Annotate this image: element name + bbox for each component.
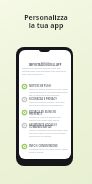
staticText: ASSISTENTE VOCALE E COMANDI RAPIDI [29,123,68,129]
button[interactable]: SICUREZZA E PRIVACY [19,97,71,107]
other: ASSISTENTE VOCALE E COMANDI RAPIDI [22,123,27,128]
button[interactable]: INFO E CONDIVISIONE [19,144,71,154]
other: INFO E CONDIVISIONE [22,144,27,149]
staticText: RICERCA ED ELENCHI PREFERITI [29,110,68,116]
other: NOTIFICHE PUSH [22,84,27,89]
staticText: Controlla chi puo vedere i tuoi dati per… [29,101,68,107]
staticText: Condividi l'app con i tuoi amici e leggi… [29,148,68,154]
staticText: IMPOSTAZIONI DELL'APP [19,63,71,67]
staticText: Personalizza la tua app [24,13,68,30]
staticText: Gestisci le ricerche salvate e gli elenc… [29,116,68,122]
staticText: INFO E CONDIVISIONE [29,144,58,148]
button[interactable]: RICERCA ED ELENCHI PREFERITI [19,110,71,122]
other: RICERCA ED ELENCHI PREFERITI [22,110,27,115]
button[interactable]: ASSISTENTE VOCALE E COMANDI RAPIDI [19,123,71,138]
staticText: Ricevi un avviso quando ci sono nuovi ag… [29,88,68,97]
staticText: SEZIONE [19,61,71,64]
staticText: Attiva i comandi vocali per usare l'app … [29,129,68,138]
staticText: SICUREZZA E PRIVACY [29,97,57,101]
staticText: NOTIFICHE PUSH [29,84,51,88]
other: SICUREZZA E PRIVACY [22,97,27,102]
button[interactable]: NOTIFICHE PUSH [19,84,71,97]
staticText: Scegli quali funzioni attivare nella tua… [22,67,68,76]
